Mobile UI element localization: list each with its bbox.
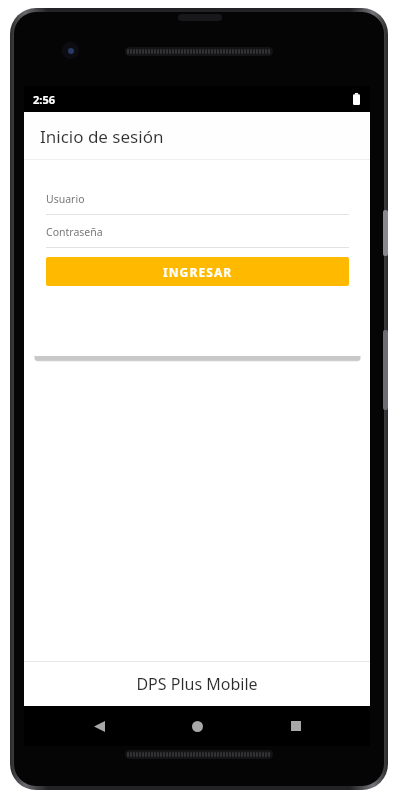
button[interactable]: INGRESAR [46, 257, 349, 286]
button[interactable]: Back [75, 706, 123, 746]
staticText: DPS Plus Mobile [136, 673, 258, 695]
staticText: Usuario [46, 192, 85, 206]
button[interactable]: DPS Plus Mobile [24, 662, 370, 706]
button[interactable]: Contraseña [33, 217, 362, 248]
staticText: Contraseña [46, 225, 103, 239]
button[interactable]: Home [173, 706, 221, 746]
button[interactable]: Recent apps [272, 706, 320, 746]
staticText: 2:56 [33, 92, 55, 107]
staticText: Inicio de sesión [40, 125, 164, 148]
staticText: INGRESAR [163, 264, 233, 280]
button[interactable]: Usuario [33, 184, 362, 215]
